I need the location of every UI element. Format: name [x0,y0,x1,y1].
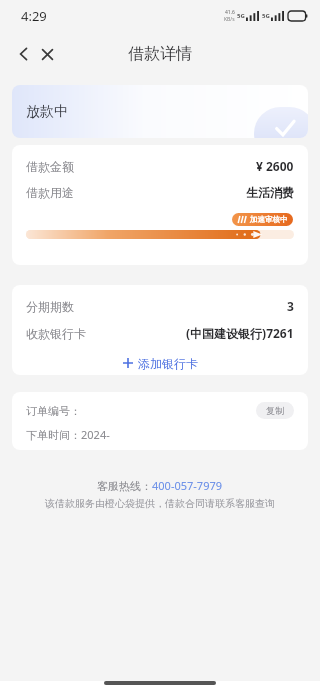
button[interactable]: 复制 [256,402,294,419]
button[interactable]: 放款中 [12,85,308,138]
staticText: 5G [237,12,245,20]
staticText: 收款银行卡 [26,326,86,341]
staticText: 复制 [266,405,284,416]
staticText: 3 [287,298,294,314]
staticText: 分期期数 [26,299,74,314]
staticText: 5G [262,12,270,20]
staticText: 下单时间：2024- [26,427,110,442]
staticText: 加速审核中 [250,215,288,224]
staticText: 该借款服务由橙心袋提供，借款合同请联系客服查询 [45,497,275,510]
staticText: 借款详情 [128,44,192,64]
staticText: ¥ 2600 [256,158,294,174]
staticText: 4:29 [21,7,47,25]
staticText: 放款中 [26,103,68,121]
staticText: 客服热线： [97,479,152,493]
staticText: 借款用途 [26,185,74,200]
staticText: 添加银行卡 [138,356,198,371]
staticText: 借款金额 [26,159,74,174]
staticText: (中国建设银行)7261 [186,325,294,341]
button[interactable]: 客服热线： [97,478,223,493]
staticText: 生活消费 [246,185,294,200]
button[interactable]: 加速审核中 [237,213,288,226]
staticText: 订单编号： [26,404,81,418]
button[interactable]: 添加银行卡 [26,353,294,373]
button[interactable]: Close [33,40,61,68]
staticText: KB/s [224,16,235,23]
staticText: 400-057-7979 [152,478,223,493]
staticText: 41.6 [225,9,235,16]
button[interactable]: Back [10,40,38,68]
